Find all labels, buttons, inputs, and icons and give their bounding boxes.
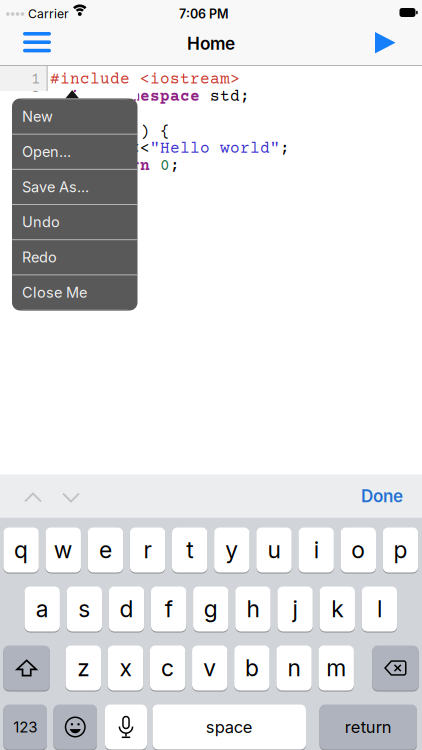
button[interactable]: u xyxy=(256,527,292,572)
button[interactable]: g xyxy=(193,586,228,631)
staticText: n xyxy=(288,654,301,682)
button[interactable]: m xyxy=(318,645,354,690)
button[interactable]: r xyxy=(130,527,165,572)
staticText: s xyxy=(78,595,90,623)
staticText: ; xyxy=(280,140,290,158)
staticText: return xyxy=(345,717,392,737)
staticText: int xyxy=(50,123,80,141)
staticText: z xyxy=(77,654,89,682)
button[interactable]: Menu xyxy=(17,26,57,58)
button[interactable]: Next field xyxy=(57,485,85,510)
button[interactable]: x xyxy=(108,645,143,690)
staticText: e xyxy=(99,536,112,564)
staticText: 0 xyxy=(160,157,170,175)
staticText: cout<< xyxy=(50,140,150,158)
staticText: } xyxy=(50,175,60,193)
button[interactable]: c xyxy=(150,645,185,690)
staticText: x xyxy=(119,654,131,682)
staticText: ; xyxy=(170,157,180,175)
button[interactable]: Redo xyxy=(12,240,137,274)
staticText: o xyxy=(351,536,365,564)
staticText: Redo xyxy=(22,248,57,266)
staticText: w xyxy=(54,536,73,564)
staticText: #include <iostream> xyxy=(50,71,240,89)
staticText: i xyxy=(314,536,319,564)
button[interactable]: Numbers xyxy=(3,704,47,749)
button[interactable]: i xyxy=(298,527,334,572)
staticText: return xyxy=(50,157,150,175)
staticText: Open... xyxy=(22,143,71,160)
button[interactable]: s xyxy=(67,586,102,631)
button[interactable]: Emoji xyxy=(53,704,97,749)
button[interactable]: Dictation xyxy=(105,704,147,749)
button[interactable]: Undo xyxy=(12,205,137,239)
button[interactable]: l xyxy=(362,586,397,631)
staticText: Home xyxy=(187,33,235,54)
staticText: a xyxy=(36,595,49,623)
staticText: q xyxy=(14,536,28,564)
button[interactable]: New xyxy=(12,99,137,134)
staticText: Carrier xyxy=(28,6,69,21)
staticText: p xyxy=(393,536,407,564)
staticText: b xyxy=(245,654,259,682)
button[interactable]: Done xyxy=(353,480,411,512)
button[interactable]: return xyxy=(319,704,417,749)
staticText: f xyxy=(165,595,173,623)
staticText: t xyxy=(186,536,193,564)
button[interactable]: Shift xyxy=(3,645,50,690)
button[interactable]: Save As... xyxy=(12,170,137,204)
button[interactable]: Open... xyxy=(12,135,137,169)
staticText: std; xyxy=(200,88,250,106)
staticText: c xyxy=(161,654,174,682)
staticText: u xyxy=(267,536,280,564)
button[interactable]: q xyxy=(3,527,39,572)
button[interactable]: d xyxy=(109,586,144,631)
staticText: v xyxy=(203,654,216,682)
staticText: h xyxy=(246,595,259,623)
button[interactable]: o xyxy=(341,527,376,572)
staticText: "Hello world" xyxy=(150,140,280,158)
button[interactable]: b xyxy=(234,645,270,690)
button[interactable]: f xyxy=(151,586,186,631)
button[interactable]: v xyxy=(192,645,227,690)
staticText: r xyxy=(143,536,151,564)
button[interactable]: Delete xyxy=(372,645,419,690)
staticText: New xyxy=(22,108,53,125)
staticText: Undo xyxy=(22,213,60,231)
button[interactable]: Previous field xyxy=(19,485,47,510)
button[interactable]: k xyxy=(320,586,355,631)
staticText: y xyxy=(225,536,238,564)
button[interactable]: Run xyxy=(369,26,401,59)
button[interactable]: h xyxy=(235,586,271,631)
staticText: 1 xyxy=(31,71,41,89)
button[interactable]: e xyxy=(88,527,123,572)
button[interactable]: a xyxy=(24,586,60,631)
button[interactable]: Close Me xyxy=(12,275,137,310)
staticText: main() { xyxy=(80,123,170,141)
staticText: 7:06 PM xyxy=(179,6,229,22)
staticText: 2 xyxy=(31,88,41,106)
staticText: using namespace xyxy=(50,88,200,106)
button[interactable]: n xyxy=(276,645,312,690)
button[interactable]: p xyxy=(383,527,418,572)
button[interactable]: z xyxy=(66,645,101,690)
button[interactable]: j xyxy=(277,586,313,631)
staticText: j xyxy=(293,595,298,623)
staticText: Done xyxy=(361,486,403,506)
staticText: g xyxy=(204,595,218,623)
staticText: Close Me xyxy=(22,284,87,301)
staticText: k xyxy=(331,595,343,623)
button[interactable]: y xyxy=(214,527,250,572)
staticText: 123 xyxy=(13,718,37,736)
button[interactable]: w xyxy=(45,527,81,572)
staticText: l xyxy=(377,595,382,623)
button[interactable]: space xyxy=(152,704,306,749)
staticText: d xyxy=(119,595,133,623)
staticText: Save As... xyxy=(22,178,89,196)
staticText: space xyxy=(206,717,253,737)
staticText: m xyxy=(326,654,346,682)
button[interactable]: t xyxy=(172,527,207,572)
